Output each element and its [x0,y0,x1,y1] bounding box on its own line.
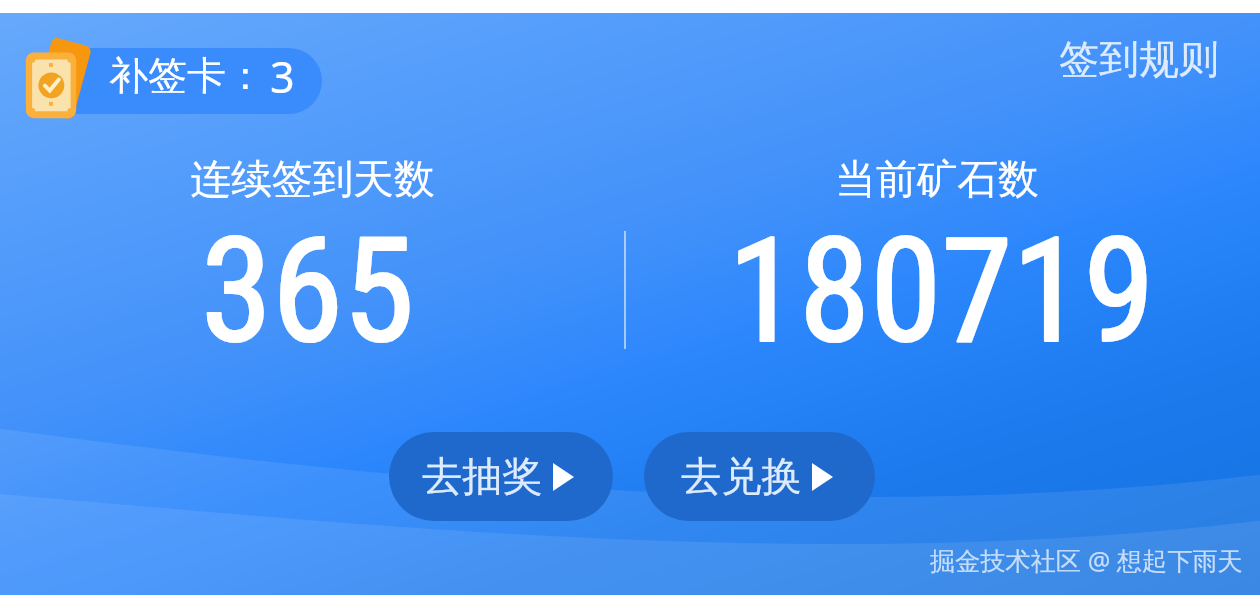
staticText: 180719 [728,207,1155,376]
button[interactable]: 签到规则 [1055,34,1223,84]
staticText: 365 [201,207,415,376]
button[interactable]: 去兑换 [644,432,875,521]
button[interactable]: 补签卡： [36,48,322,114]
staticText: 3 [270,48,295,106]
staticText: 掘金技术社区 @ 想起下雨天 [930,543,1243,577]
staticText: 去抽奖 [422,451,543,502]
other: 补签卡 [23,39,93,121]
staticText: 签到规则 [1059,34,1219,84]
staticText: 当前矿石数 [835,154,1039,205]
staticText: 去兑换 [681,451,802,502]
staticText: 补签卡： [109,51,265,100]
staticText: 连续签到天数 [190,154,435,205]
button[interactable]: 去抽奖 [389,432,613,521]
staticText: 180719 [728,207,1155,376]
staticText: 365 [201,207,415,376]
